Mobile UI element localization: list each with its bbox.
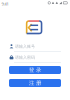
staticText: 请输入密码 <box>15 55 35 60</box>
staticText: 9:41 <box>1 1 8 6</box>
staticText: 请输入账号 <box>15 44 35 49</box>
button[interactable]: 注 册 <box>9 79 61 87</box>
staticText: 注 册 <box>29 80 41 86</box>
button[interactable]: 登 录 <box>9 66 61 74</box>
staticText: 登 录 <box>29 67 41 73</box>
